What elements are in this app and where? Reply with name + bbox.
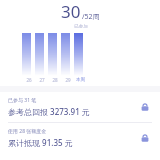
staticText: 已参与	[74, 24, 88, 28]
button[interactable]: 30	[0, 0, 160, 28]
other: Total return detail	[138, 100, 152, 114]
staticText: 29	[65, 77, 71, 83]
staticText: 27	[39, 77, 45, 83]
staticText: 28	[52, 77, 58, 83]
button[interactable]: 26	[0, 28, 160, 86]
staticText: 参考总回报 3273.91 元	[8, 106, 90, 117]
button[interactable]: 已参与 31 笔	[0, 92, 160, 122]
staticText: 26	[26, 77, 32, 83]
other: Cash offset detail	[138, 131, 152, 145]
staticText: 30	[61, 0, 81, 23]
staticText: 本周	[76, 77, 85, 83]
staticText: 使用 28 张额度金	[8, 128, 47, 135]
staticText: /52周	[82, 12, 100, 22]
staticText: 累计抵现 91.35 元	[8, 137, 73, 148]
staticText: 已参与 31 笔	[8, 97, 37, 104]
button[interactable]: 使用 28 张额度金	[0, 123, 160, 153]
